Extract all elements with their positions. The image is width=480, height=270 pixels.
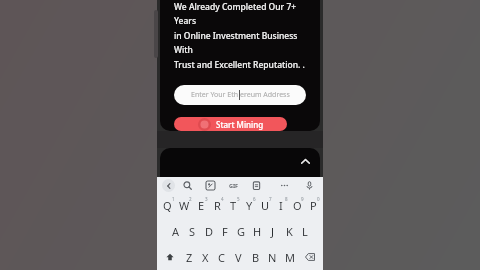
button[interactable]: Search (181, 179, 194, 192)
staticText: B (252, 250, 260, 265)
staticText: Start Mining (216, 119, 264, 130)
staticText: Enter Your Eth (191, 90, 239, 100)
button[interactable]: P (305, 193, 321, 218)
button[interactable]: V (230, 244, 247, 270)
button[interactable]: Backspace (298, 244, 321, 270)
staticText: 5 (237, 196, 240, 202)
button[interactable]: GIF (227, 179, 240, 192)
staticText: C (218, 250, 225, 265)
staticText: W (179, 198, 190, 213)
staticText: in Online Investment Business With (174, 30, 306, 55)
staticText: U (261, 198, 270, 213)
staticText: 9 (301, 196, 304, 202)
staticText: O (293, 198, 302, 213)
staticText: GIF (229, 182, 239, 189)
button[interactable]: Stickers (204, 179, 217, 192)
button[interactable]: Z (181, 244, 197, 270)
button[interactable]: A (167, 218, 184, 244)
staticText: G (237, 224, 246, 239)
staticText: 7 (269, 196, 272, 202)
button[interactable]: Scroll up (296, 152, 314, 170)
staticText: M (285, 250, 295, 265)
staticText: ereum Address (240, 90, 290, 100)
button[interactable]: Q (159, 193, 176, 218)
button[interactable]: B (247, 244, 264, 270)
staticText: L (302, 224, 308, 239)
button[interactable]: X (197, 244, 213, 270)
staticText: 8 (285, 196, 288, 202)
button[interactable]: D (201, 218, 217, 244)
staticText: 0 (317, 196, 320, 202)
staticText: A (172, 224, 180, 239)
staticText: 4 (221, 196, 224, 202)
button[interactable]: H (249, 218, 265, 244)
button[interactable]: I (273, 193, 289, 218)
staticText: Z (186, 250, 193, 265)
button[interactable]: N (264, 244, 281, 270)
staticText: Q (163, 198, 172, 213)
button[interactable]: Voice input (303, 179, 316, 192)
staticText: 6 (253, 196, 256, 202)
button[interactable]: R (209, 193, 225, 218)
button[interactable]: S (184, 218, 201, 244)
button[interactable]: O (289, 193, 305, 218)
button[interactable]: K (281, 218, 297, 244)
staticText: Trust and Excellent Reputation. . (174, 59, 305, 71)
button[interactable]: Back (162, 179, 175, 192)
button[interactable]: F (217, 218, 233, 244)
staticText: P (310, 198, 317, 213)
staticText: E (198, 198, 205, 213)
staticText: H (253, 224, 262, 239)
button[interactable]: T (225, 193, 241, 218)
button[interactable]: C (213, 244, 230, 270)
button[interactable]: G (233, 218, 249, 244)
staticText: J (271, 224, 275, 239)
staticText: V (235, 250, 242, 265)
button[interactable]: Clipboard (250, 179, 263, 192)
staticText: We Already Completed Our 7+ Years (174, 1, 306, 26)
button[interactable]: Start Mining (174, 117, 287, 131)
staticText: T (230, 198, 237, 213)
button[interactable]: Enter Your Eth (174, 85, 306, 105)
button[interactable]: E (193, 193, 209, 218)
button[interactable]: M (281, 244, 298, 270)
staticText: N (268, 250, 277, 265)
staticText: X (202, 250, 209, 265)
button[interactable]: W (176, 193, 193, 218)
button[interactable]: Shift (159, 244, 181, 270)
button[interactable]: U (257, 193, 273, 218)
staticText: S (189, 224, 196, 239)
staticText: 3 (205, 196, 208, 202)
staticText: F (222, 224, 228, 239)
staticText: K (286, 224, 293, 239)
staticText: I (279, 198, 283, 213)
button[interactable]: L (297, 218, 313, 244)
staticText: Y (246, 198, 253, 213)
button[interactable]: More options (278, 179, 291, 192)
staticText: R (214, 198, 221, 213)
staticText: 2 (189, 196, 192, 202)
staticText: D (205, 224, 214, 239)
button[interactable]: Y (241, 193, 257, 218)
button[interactable]: J (265, 218, 281, 244)
staticText: 1 (172, 196, 175, 202)
